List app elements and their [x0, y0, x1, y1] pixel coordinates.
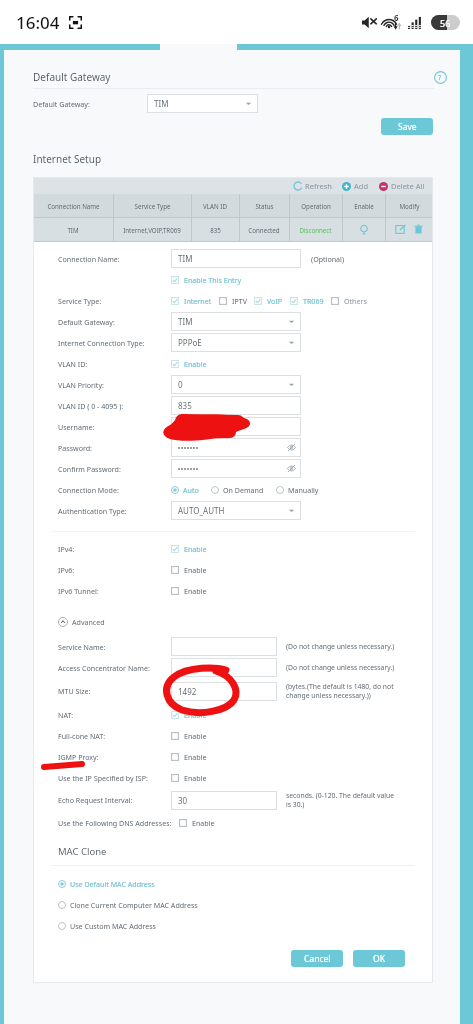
staticText: NAT: — [58, 710, 74, 720]
staticText: Clone Current Computer MAC Address — [70, 900, 198, 910]
staticText: ? — [438, 72, 442, 82]
button[interactable]: Clone Current Computer MAC Address — [58, 900, 198, 910]
staticText: Enable — [184, 565, 207, 575]
staticText: TIM — [154, 98, 169, 109]
button[interactable]: Enable — [179, 818, 215, 828]
button[interactable]: Enable — [171, 773, 207, 783]
staticText: Default Gateway — [33, 70, 111, 84]
staticText: (bytes.(The default is 1480, do not chan… — [286, 682, 394, 700]
button[interactable]: OK — [353, 950, 405, 967]
button[interactable]: Use Custom MAC Address — [58, 921, 157, 931]
staticText: VoIP — [267, 296, 283, 306]
staticText: Advanced — [72, 617, 105, 627]
staticText: (Optional) — [311, 254, 345, 264]
staticText: Enable — [184, 710, 207, 720]
button[interactable]: On Demand — [211, 485, 264, 495]
staticText: 6 — [394, 12, 399, 23]
staticText: VLAN Priority: — [58, 380, 104, 390]
staticText: IPv6 Tunnel: — [58, 586, 99, 596]
staticText: Add — [354, 181, 369, 191]
staticText: VLAN ID — [203, 202, 227, 210]
button[interactable]: Advanced — [58, 617, 105, 627]
staticText: VLAN ID ( 0 - 4095 ): — [58, 401, 124, 411]
staticText: seconds. (0-120. The default value is 30… — [286, 791, 395, 809]
button[interactable]: Enable — [171, 586, 207, 596]
staticText: TIM — [178, 253, 193, 264]
staticText: Internet Connection Type: — [58, 338, 145, 348]
other: Muted — [362, 16, 377, 29]
button[interactable]: Delete — [413, 224, 424, 235]
button[interactable]: IPTV — [219, 296, 247, 306]
staticText: IGMP Proxy: — [58, 752, 99, 762]
staticText: 0 — [178, 379, 183, 390]
staticText: MAC Clone — [58, 845, 107, 858]
button[interactable]: Enable — [171, 710, 207, 720]
staticText: Enable This Entry — [184, 275, 242, 285]
button[interactable]: Help — [432, 70, 448, 84]
button[interactable]: Save — [381, 118, 433, 135]
staticText: Default Gateway: — [58, 317, 115, 327]
staticText: AUTO_AUTH — [178, 505, 225, 516]
staticText: Full-cone NAT: — [58, 731, 106, 741]
staticText: TIM — [67, 226, 79, 234]
staticText: Default Gateway: — [33, 99, 90, 109]
staticText: Connected — [248, 226, 280, 234]
staticText: IPv6: — [58, 565, 75, 575]
button[interactable]: TR069 — [290, 296, 324, 306]
staticText: Refresh — [305, 181, 332, 191]
button[interactable]: Delete All — [377, 181, 427, 191]
button[interactable]: Use Default MAC Address — [58, 879, 155, 889]
staticText: VLAN ID: — [58, 359, 88, 369]
staticText: Service Name: — [58, 642, 106, 652]
staticText: Modify — [399, 202, 420, 210]
button[interactable]: Refresh — [292, 181, 334, 191]
button[interactable]: Enable — [171, 565, 207, 575]
button[interactable]: Auto — [171, 485, 199, 495]
staticText: Use the Following DNS Addresses: — [58, 818, 172, 828]
button[interactable]: Enable This Entry — [171, 275, 242, 285]
staticText: Auto — [183, 485, 199, 495]
staticText: Operation — [301, 202, 331, 210]
staticText: IPv4: — [58, 544, 75, 554]
staticText: Enable — [354, 202, 374, 210]
button[interactable]: Add — [340, 181, 371, 191]
staticText: Enable — [184, 586, 207, 596]
button[interactable]: VoIP — [254, 296, 283, 306]
button[interactable]: Enable — [171, 359, 207, 369]
staticText: Internet — [184, 296, 212, 306]
button[interactable]: Internet — [171, 296, 212, 306]
staticText: Enable — [184, 359, 207, 369]
staticText: IPTV — [232, 296, 247, 306]
staticText: Authentication Type: — [58, 506, 127, 516]
button[interactable]: Enable — [171, 752, 207, 762]
button[interactable]: Others — [331, 296, 367, 306]
staticText: Use Default MAC Address — [70, 879, 155, 889]
staticText: Confirm Password: — [58, 464, 121, 474]
staticText: Use Custom MAC Address — [70, 921, 157, 931]
staticText: Service Type: — [58, 296, 102, 306]
button[interactable]: Edit — [395, 224, 406, 235]
staticText: Enable — [184, 752, 207, 762]
button[interactable]: Enable — [171, 544, 207, 554]
staticText: 835 — [178, 400, 192, 411]
staticText: Service Type — [134, 202, 171, 210]
staticText: Username: — [58, 422, 95, 432]
staticText: OK — [373, 953, 385, 965]
staticText: 835 — [210, 226, 221, 234]
staticText: Connection Name — [47, 202, 100, 210]
button[interactable]: Enable — [358, 224, 370, 236]
staticText: TR069 — [303, 296, 324, 306]
button[interactable]: Enable — [171, 731, 207, 741]
button[interactable]: Cancel — [291, 950, 343, 967]
staticText: Others — [344, 296, 367, 306]
staticText: PPPoE — [178, 337, 202, 348]
staticText: 56 — [440, 17, 451, 29]
staticText: Internet Setup — [33, 152, 102, 166]
staticText: On Demand — [223, 485, 264, 495]
staticText: TIM — [178, 316, 193, 327]
staticText: 16:04 — [16, 11, 60, 34]
staticText: Password: — [58, 443, 92, 453]
button[interactable]: Manually — [276, 485, 319, 495]
staticText: Enable — [192, 818, 215, 828]
staticText: Enable — [184, 731, 207, 741]
